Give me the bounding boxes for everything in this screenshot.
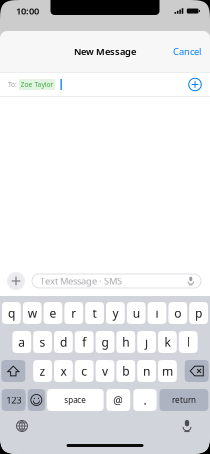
- staticText: a: [18, 334, 25, 350]
- button[interactable]: space: [47, 389, 104, 411]
- button[interactable]: Next keyboard: [9, 416, 35, 436]
- staticText: t: [93, 305, 97, 321]
- staticText: space: [64, 395, 86, 405]
- staticText: @: [113, 393, 123, 407]
- staticText: r: [71, 305, 76, 321]
- staticText: k: [164, 334, 170, 350]
- button[interactable]: Add contact: [184, 72, 206, 96]
- button[interactable]: Add attachment: [7, 272, 25, 290]
- staticText: Zoe Taylor: [20, 80, 53, 89]
- staticText: h: [122, 334, 129, 350]
- staticText: 123: [6, 394, 21, 406]
- button[interactable]: o: [168, 302, 187, 324]
- staticText: .: [143, 392, 146, 408]
- button[interactable]: b: [116, 360, 135, 382]
- button[interactable]: @: [106, 389, 130, 411]
- button[interactable]: a: [12, 331, 31, 353]
- staticText: New Message: [74, 45, 136, 58]
- staticText: To:: [8, 80, 17, 89]
- staticText: j: [145, 334, 148, 350]
- staticText: q: [8, 305, 15, 321]
- button[interactable]: Emoji: [28, 389, 45, 411]
- button[interactable]: i: [148, 302, 166, 324]
- staticText: b: [122, 363, 129, 379]
- staticText: n: [143, 363, 150, 379]
- staticText: l: [187, 334, 190, 350]
- button[interactable]: k: [158, 331, 177, 353]
- button[interactable]: x: [54, 360, 73, 382]
- button[interactable]: d: [54, 331, 73, 353]
- staticText: m: [162, 363, 173, 379]
- staticText: i: [155, 305, 158, 321]
- staticText: return: [172, 395, 196, 405]
- staticText: x: [60, 363, 66, 379]
- staticText: s: [40, 334, 46, 350]
- button[interactable]: t: [85, 302, 104, 324]
- button[interactable]: Cancel: [167, 38, 207, 65]
- button[interactable]: v: [96, 360, 114, 382]
- button[interactable]: e: [44, 302, 62, 324]
- staticText: e: [49, 305, 56, 321]
- button[interactable]: f: [75, 331, 94, 353]
- staticText: Cancel: [173, 45, 201, 58]
- staticText: y: [112, 305, 118, 321]
- staticText: p: [195, 305, 202, 321]
- button[interactable]: g: [96, 331, 114, 353]
- button[interactable]: c: [75, 360, 94, 382]
- button[interactable]: y: [106, 302, 125, 324]
- staticText: v: [102, 363, 108, 379]
- button[interactable]: return: [159, 389, 208, 411]
- button[interactable]: z: [33, 360, 52, 382]
- button[interactable]: r: [64, 302, 83, 324]
- button[interactable]: h: [116, 331, 135, 353]
- button[interactable]: j: [137, 331, 156, 353]
- button[interactable]: Dictate: [174, 416, 200, 436]
- button[interactable]: s: [33, 331, 52, 353]
- staticText: d: [60, 334, 67, 350]
- button[interactable]: q: [2, 302, 21, 324]
- button[interactable]: p: [189, 302, 208, 324]
- staticText: c: [81, 363, 87, 379]
- staticText: 10:00: [16, 5, 39, 17]
- button[interactable]: n: [137, 360, 156, 382]
- button[interactable]: u: [127, 302, 146, 324]
- staticText: u: [133, 305, 140, 321]
- button[interactable]: Delete: [185, 360, 209, 382]
- staticText: w: [28, 305, 37, 321]
- button[interactable]: m: [158, 360, 177, 382]
- staticText: o: [174, 305, 181, 321]
- button[interactable]: .: [133, 389, 157, 411]
- staticText: Text Message · SMS: [40, 275, 122, 287]
- button[interactable]: l: [179, 331, 198, 353]
- staticText: f: [82, 334, 86, 350]
- staticText: g: [101, 334, 108, 350]
- button[interactable]: Shift: [1, 360, 25, 382]
- staticText: z: [40, 363, 46, 379]
- button[interactable]: 123: [2, 389, 26, 411]
- button[interactable]: w: [23, 302, 42, 324]
